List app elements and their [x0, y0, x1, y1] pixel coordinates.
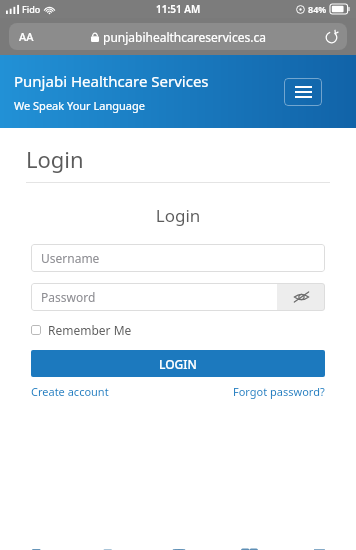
staticText: 84%: [308, 3, 327, 15]
button[interactable]: Menu: [284, 78, 322, 106]
staticText: Login: [0, 204, 356, 227]
button[interactable]: Username: [31, 244, 325, 272]
staticText: Fido: [22, 3, 41, 15]
button[interactable]: LOGIN: [31, 350, 325, 377]
staticText: Username: [41, 250, 100, 266]
button[interactable]: Password: [31, 283, 277, 311]
staticText: We Speak Your Language: [14, 98, 145, 113]
staticText: 11:51 AM: [156, 2, 201, 16]
button[interactable]: Reload: [323, 29, 339, 45]
button[interactable]: AA: [9, 23, 347, 50]
staticText: LOGIN: [159, 356, 197, 372]
staticText: Login: [26, 144, 84, 174]
staticText: AA: [19, 29, 34, 44]
staticText: Remember Me: [48, 322, 132, 338]
staticText: Punjabi Healthcare Services: [14, 71, 209, 91]
button[interactable]: Show password: [277, 283, 325, 311]
staticText: punjabihealthcareservices.ca: [103, 29, 266, 45]
button[interactable]: Forgot password?: [233, 384, 325, 399]
staticText: Password: [41, 289, 96, 305]
button[interactable]: Create account: [31, 384, 109, 399]
button[interactable]: Remember Me: [31, 322, 132, 338]
